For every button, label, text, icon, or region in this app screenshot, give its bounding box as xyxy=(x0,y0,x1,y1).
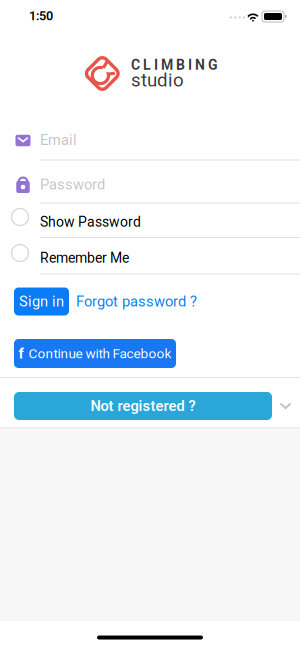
staticText: Sign in xyxy=(19,293,64,310)
staticText: Remember Me xyxy=(40,250,129,266)
staticText: studio xyxy=(131,69,184,91)
staticText: Show Password xyxy=(40,214,141,230)
staticText: 1:50 xyxy=(29,9,53,23)
button[interactable]: f xyxy=(14,339,176,368)
button[interactable]: Show Password xyxy=(0,206,300,236)
staticText: CLIMBING xyxy=(131,57,218,73)
staticText: Email xyxy=(40,131,77,149)
staticText: Continue with Facebook xyxy=(28,345,171,361)
staticText: Password xyxy=(40,176,105,193)
staticText: f xyxy=(18,345,23,362)
button[interactable]: Forgot password ? xyxy=(76,293,256,310)
button[interactable]: Remember Me xyxy=(0,242,300,272)
button[interactable]: Not registered ? xyxy=(14,392,272,420)
staticText: Forgot password ? xyxy=(76,293,197,310)
button[interactable]: Dismiss keyboard xyxy=(279,402,291,409)
staticText: Not registered ? xyxy=(90,397,195,415)
button[interactable]: Sign in xyxy=(14,287,69,315)
